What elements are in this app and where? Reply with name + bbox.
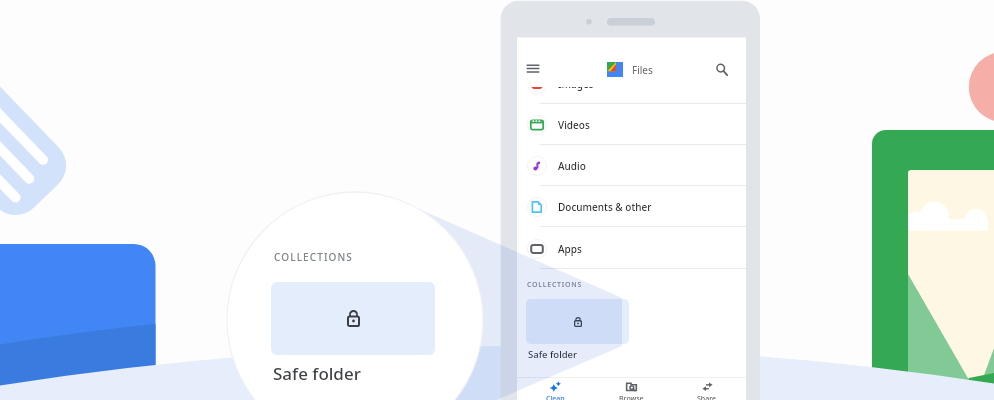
staticText: Audio xyxy=(558,159,586,173)
button[interactable]: Safe folder xyxy=(526,299,629,344)
button[interactable]: Audio xyxy=(517,145,746,186)
staticText: Browse xyxy=(619,394,644,400)
button[interactable]: Safe folder xyxy=(271,282,435,355)
staticText: Clean xyxy=(546,394,565,400)
staticText: Images xyxy=(558,77,594,91)
button[interactable]: Apps xyxy=(517,228,746,269)
button[interactable]: Open navigation menu xyxy=(523,60,543,80)
button[interactable]: Images xyxy=(517,63,746,104)
button[interactable]: Safe folder xyxy=(528,348,578,361)
staticText: Safe folder xyxy=(273,362,361,385)
staticText: Videos xyxy=(558,118,590,132)
button[interactable]: Videos xyxy=(517,104,746,145)
staticText: Documents & other xyxy=(558,200,652,214)
staticText: COLLECTIONS xyxy=(527,280,583,290)
button[interactable]: Files xyxy=(607,62,653,77)
button[interactable]: Browse xyxy=(607,379,655,400)
button[interactable]: Share xyxy=(683,379,731,400)
button[interactable]: Documents & other xyxy=(517,186,746,227)
button[interactable]: COLLECTIONS xyxy=(527,280,583,290)
staticText: Share xyxy=(697,394,717,400)
staticText: Files xyxy=(632,63,653,77)
staticText: Safe folder xyxy=(528,348,578,361)
button[interactable]: Search xyxy=(712,59,730,77)
staticText: COLLECTIONS xyxy=(274,250,353,264)
staticText: Apps xyxy=(558,242,582,256)
button[interactable]: Clean xyxy=(531,379,579,400)
